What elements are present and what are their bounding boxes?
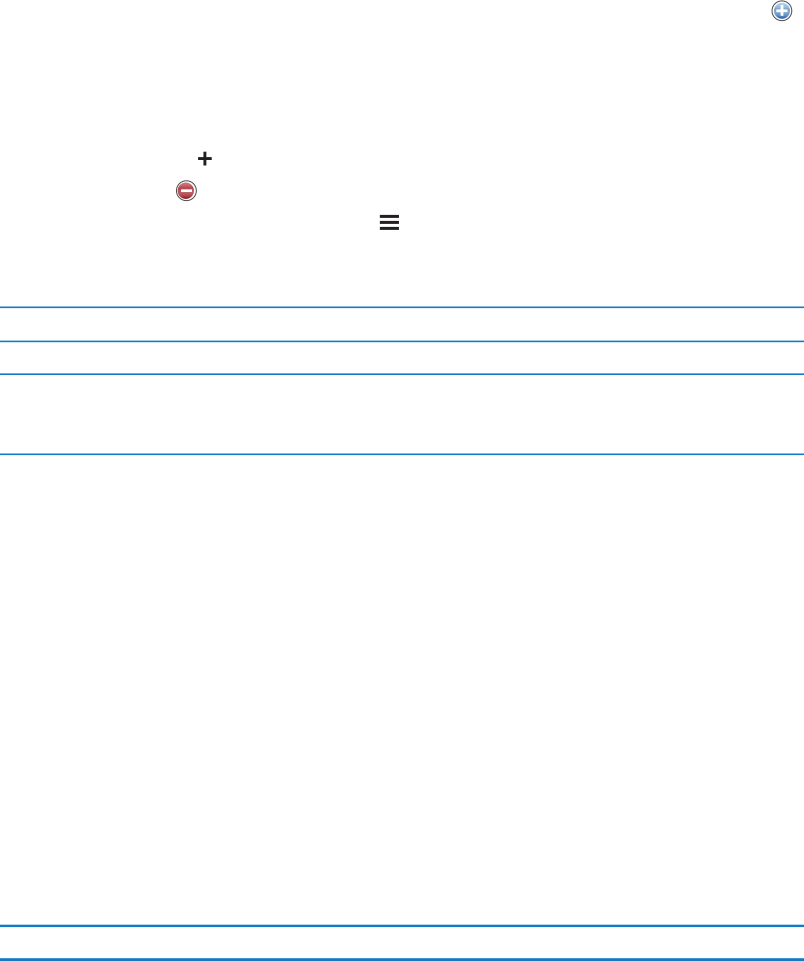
button[interactable]: Remove: [175, 180, 197, 202]
button[interactable]: Add: [771, 0, 793, 22]
button[interactable]: Menu: [380, 215, 399, 230]
button[interactable]: Expand: [198, 152, 212, 165]
